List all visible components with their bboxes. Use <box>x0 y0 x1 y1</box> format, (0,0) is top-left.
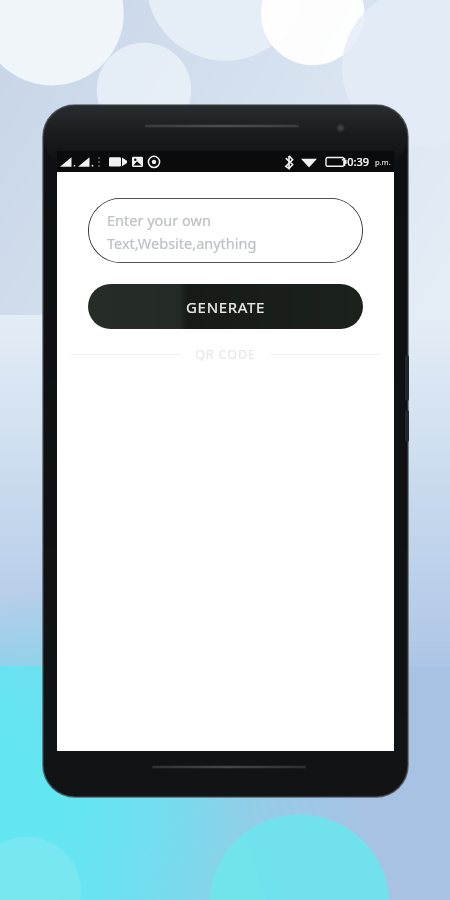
staticText: p.m. <box>375 157 391 167</box>
staticText: QR CODE <box>195 346 256 363</box>
staticText: Enter your own <box>107 210 211 230</box>
staticText: GENERATE <box>186 297 266 317</box>
staticText: Text,Website,anything <box>107 233 257 253</box>
button[interactable]: Enter your own <box>88 198 363 263</box>
button[interactable]: GENERATE <box>88 284 363 329</box>
staticText: 10:39 <box>341 154 370 169</box>
